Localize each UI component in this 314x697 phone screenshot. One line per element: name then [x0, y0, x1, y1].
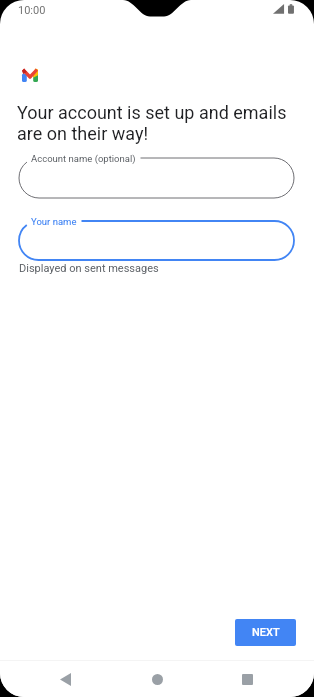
button[interactable]: Back	[45, 664, 86, 694]
staticText: Account name (optional)	[31, 153, 136, 164]
button[interactable]: Home	[137, 664, 178, 694]
staticText: NEXT	[252, 626, 280, 639]
button[interactable]: Account name (optional)	[19, 158, 294, 198]
button[interactable]: Recent apps	[227, 664, 268, 694]
staticText: Your name	[31, 216, 77, 227]
button[interactable]: NEXT	[235, 619, 296, 646]
staticText: 10:00	[18, 4, 46, 17]
staticText: Your account is set up and emails are on…	[17, 102, 297, 144]
staticText: Displayed on sent messages	[19, 262, 159, 275]
button[interactable]: Your name	[19, 221, 294, 260]
